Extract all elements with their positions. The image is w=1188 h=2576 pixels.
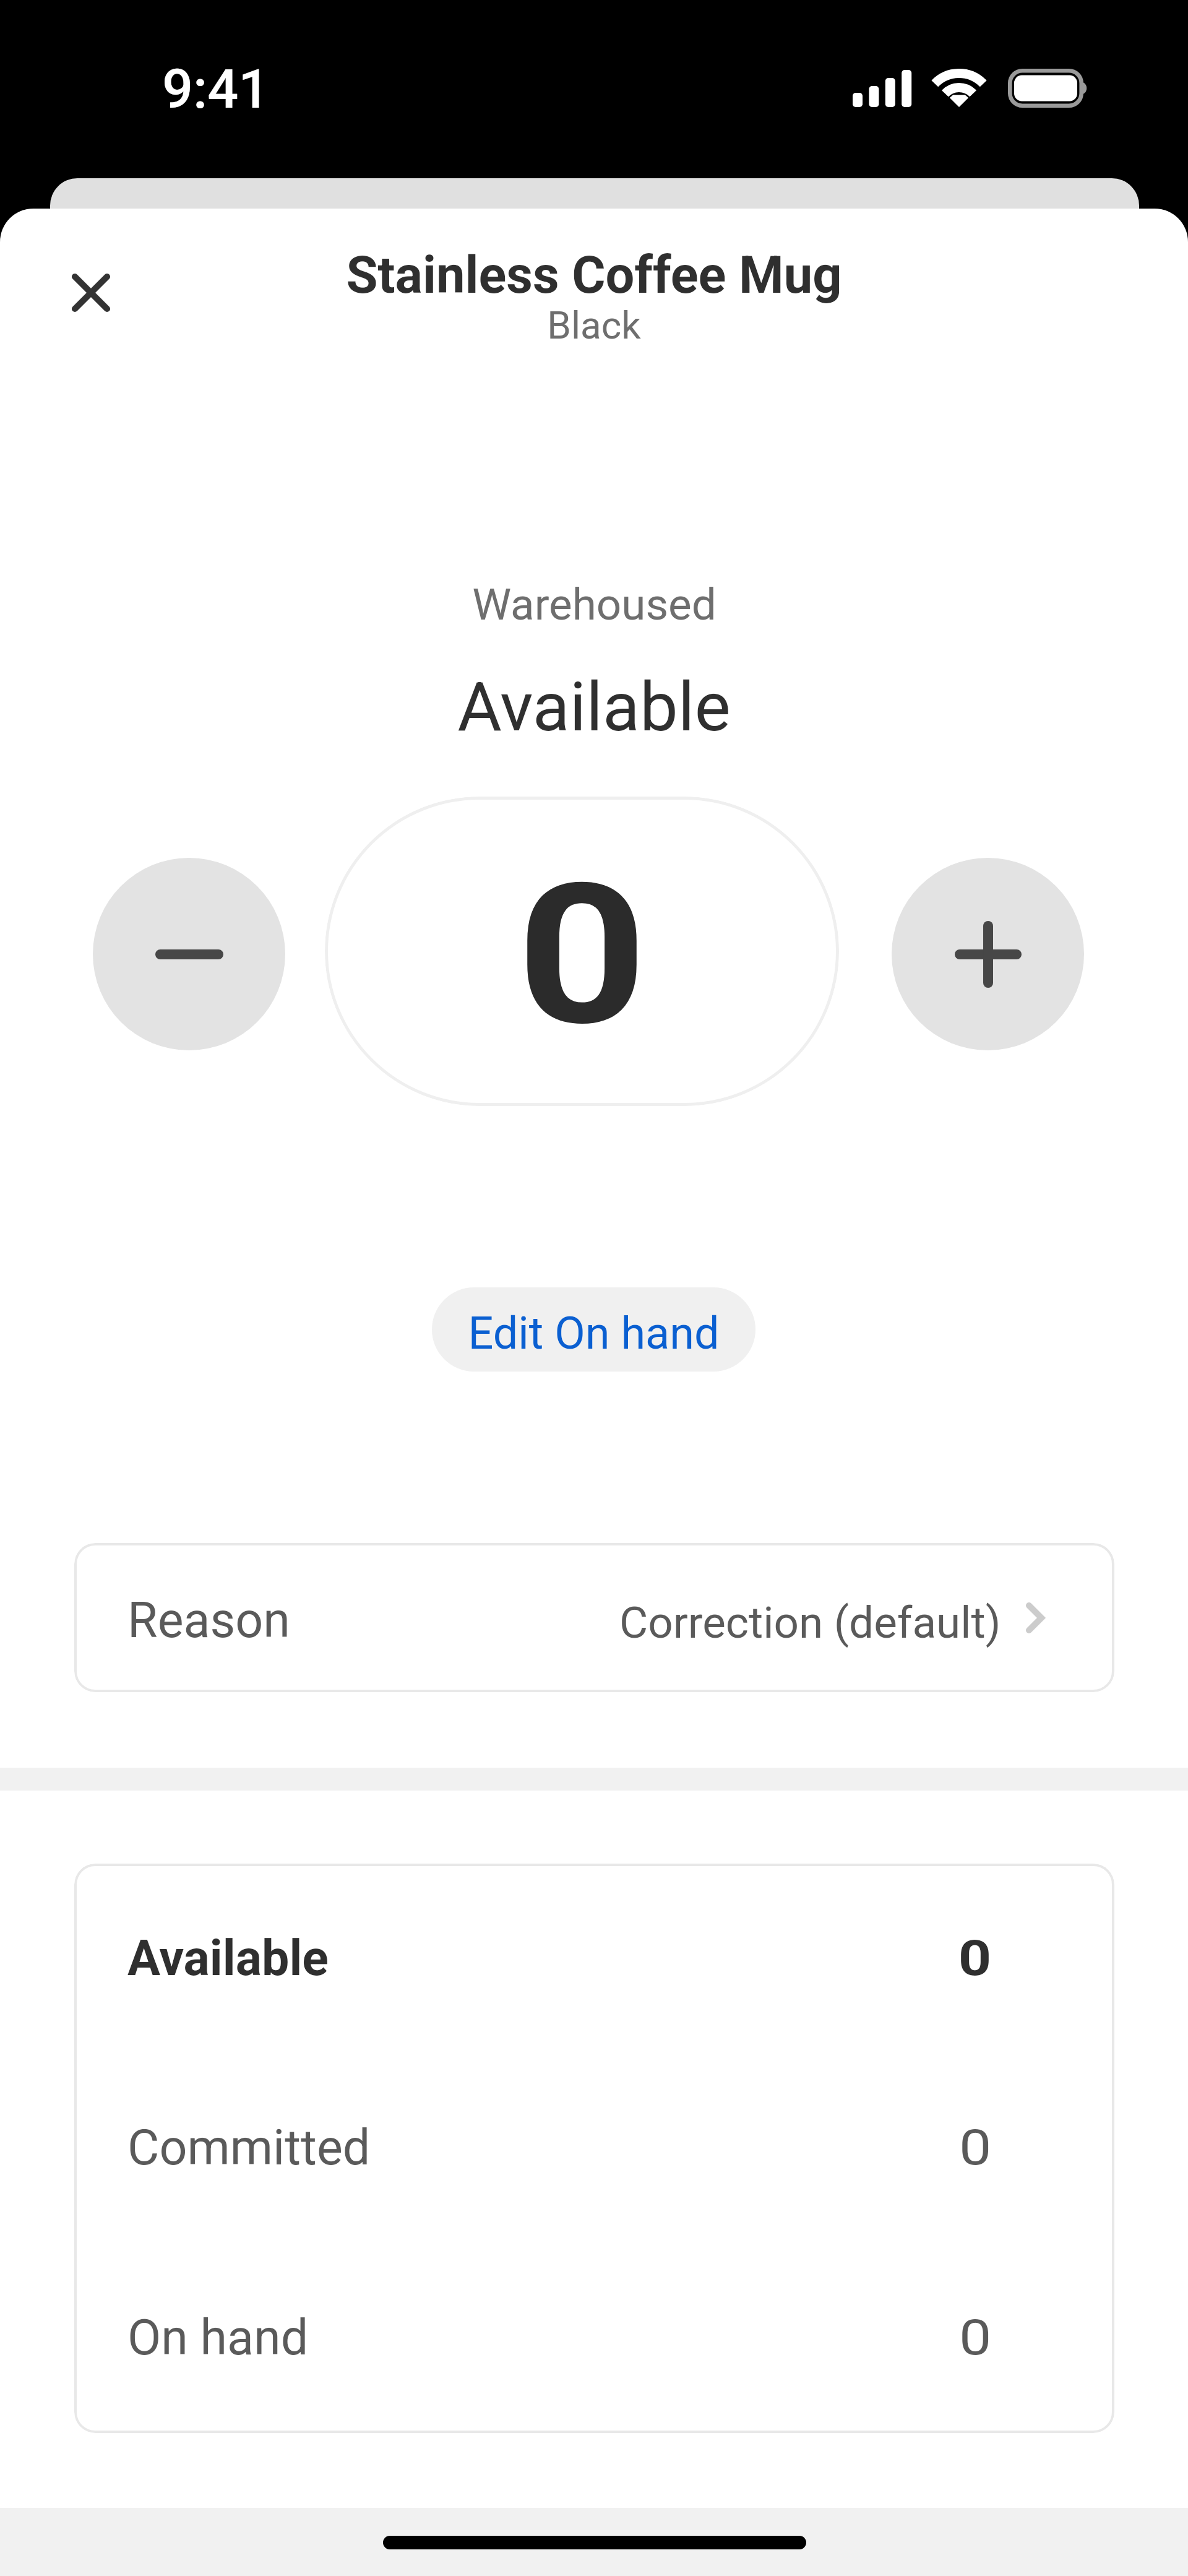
button[interactable]: Committed: [74, 2053, 1114, 2243]
button[interactable]: Available: [74, 1864, 1114, 2053]
staticText: 0: [516, 842, 647, 1070]
button[interactable]: On hand: [74, 2243, 1114, 2433]
staticText: Reason: [127, 1592, 290, 1649]
staticText: 0: [959, 2119, 992, 2177]
staticText: Available: [127, 1930, 329, 1987]
staticText: Edit On hand: [468, 1307, 720, 1359]
staticText: Correction (default): [619, 1597, 1001, 1648]
button[interactable]: Reason: [74, 1543, 1114, 1692]
button[interactable]: Decrease quantity: [93, 858, 285, 1050]
staticText: On hand: [127, 2309, 309, 2367]
staticText: 0: [958, 1930, 992, 1987]
button[interactable]: Edit On hand: [432, 1287, 755, 1372]
button[interactable]: 0: [325, 797, 839, 1106]
staticText: Warehoused: [472, 579, 717, 630]
staticText: Available: [457, 667, 731, 747]
staticText: Stainless Coffee Mug: [346, 245, 842, 305]
button[interactable]: Close: [54, 256, 128, 330]
staticText: 9:41: [162, 57, 270, 121]
staticText: Committed: [127, 2119, 371, 2177]
button[interactable]: Increase quantity: [892, 858, 1084, 1050]
staticText: 0: [959, 2309, 992, 2367]
staticText: Black: [547, 303, 641, 348]
